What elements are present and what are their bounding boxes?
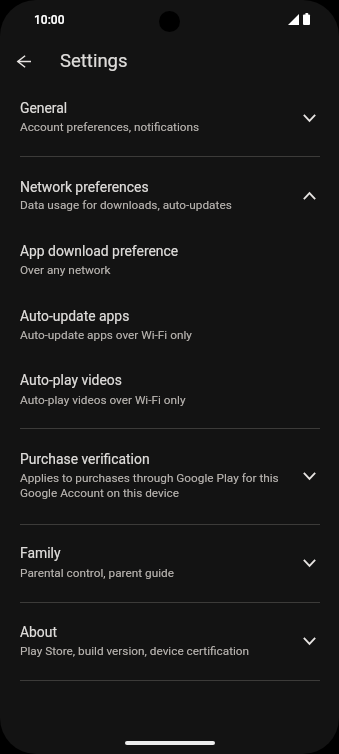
button[interactable]: Auto-update apps <box>0 285 339 350</box>
staticText: Account preferences, notifications <box>20 120 288 134</box>
staticText: Purchase verification <box>20 451 285 467</box>
staticText: 10:00 <box>34 13 65 27</box>
staticText: Over any network <box>20 263 288 277</box>
other: Expand <box>303 114 316 122</box>
staticText: Network preferences <box>20 179 288 195</box>
staticText: Data usage for downloads, auto-updates <box>20 198 288 212</box>
staticText: Auto-update apps <box>20 308 288 324</box>
button[interactable]: Purchase verification <box>0 429 339 523</box>
button[interactable]: App download preference <box>0 221 339 285</box>
staticText: Settings <box>60 50 128 72</box>
button[interactable]: Network preferences <box>0 157 339 220</box>
button[interactable]: Back <box>4 41 44 81</box>
staticText: Auto-update apps over Wi-Fi only <box>20 328 288 342</box>
other: Collapse <box>303 192 316 200</box>
staticText: General <box>20 100 288 116</box>
button[interactable]: Family <box>0 524 339 602</box>
button[interactable]: Auto-play videos <box>0 350 339 428</box>
button[interactable]: General <box>0 88 339 156</box>
staticText: App download preference <box>20 243 288 259</box>
other: Expand <box>303 559 316 567</box>
staticText: Applies to purchases through Google Play… <box>20 471 285 500</box>
staticText: Auto-play videos over Wi-Fi only <box>20 393 288 407</box>
other: Expand <box>303 637 316 645</box>
staticText: Parental control, parent guide <box>20 566 288 580</box>
other: Expand <box>303 472 316 480</box>
staticText: About <box>20 624 288 640</box>
staticText: Family <box>20 545 288 561</box>
staticText: Auto-play videos <box>20 372 288 388</box>
staticText: Play Store, build version, device certif… <box>20 644 288 658</box>
button[interactable]: About <box>0 603 339 680</box>
